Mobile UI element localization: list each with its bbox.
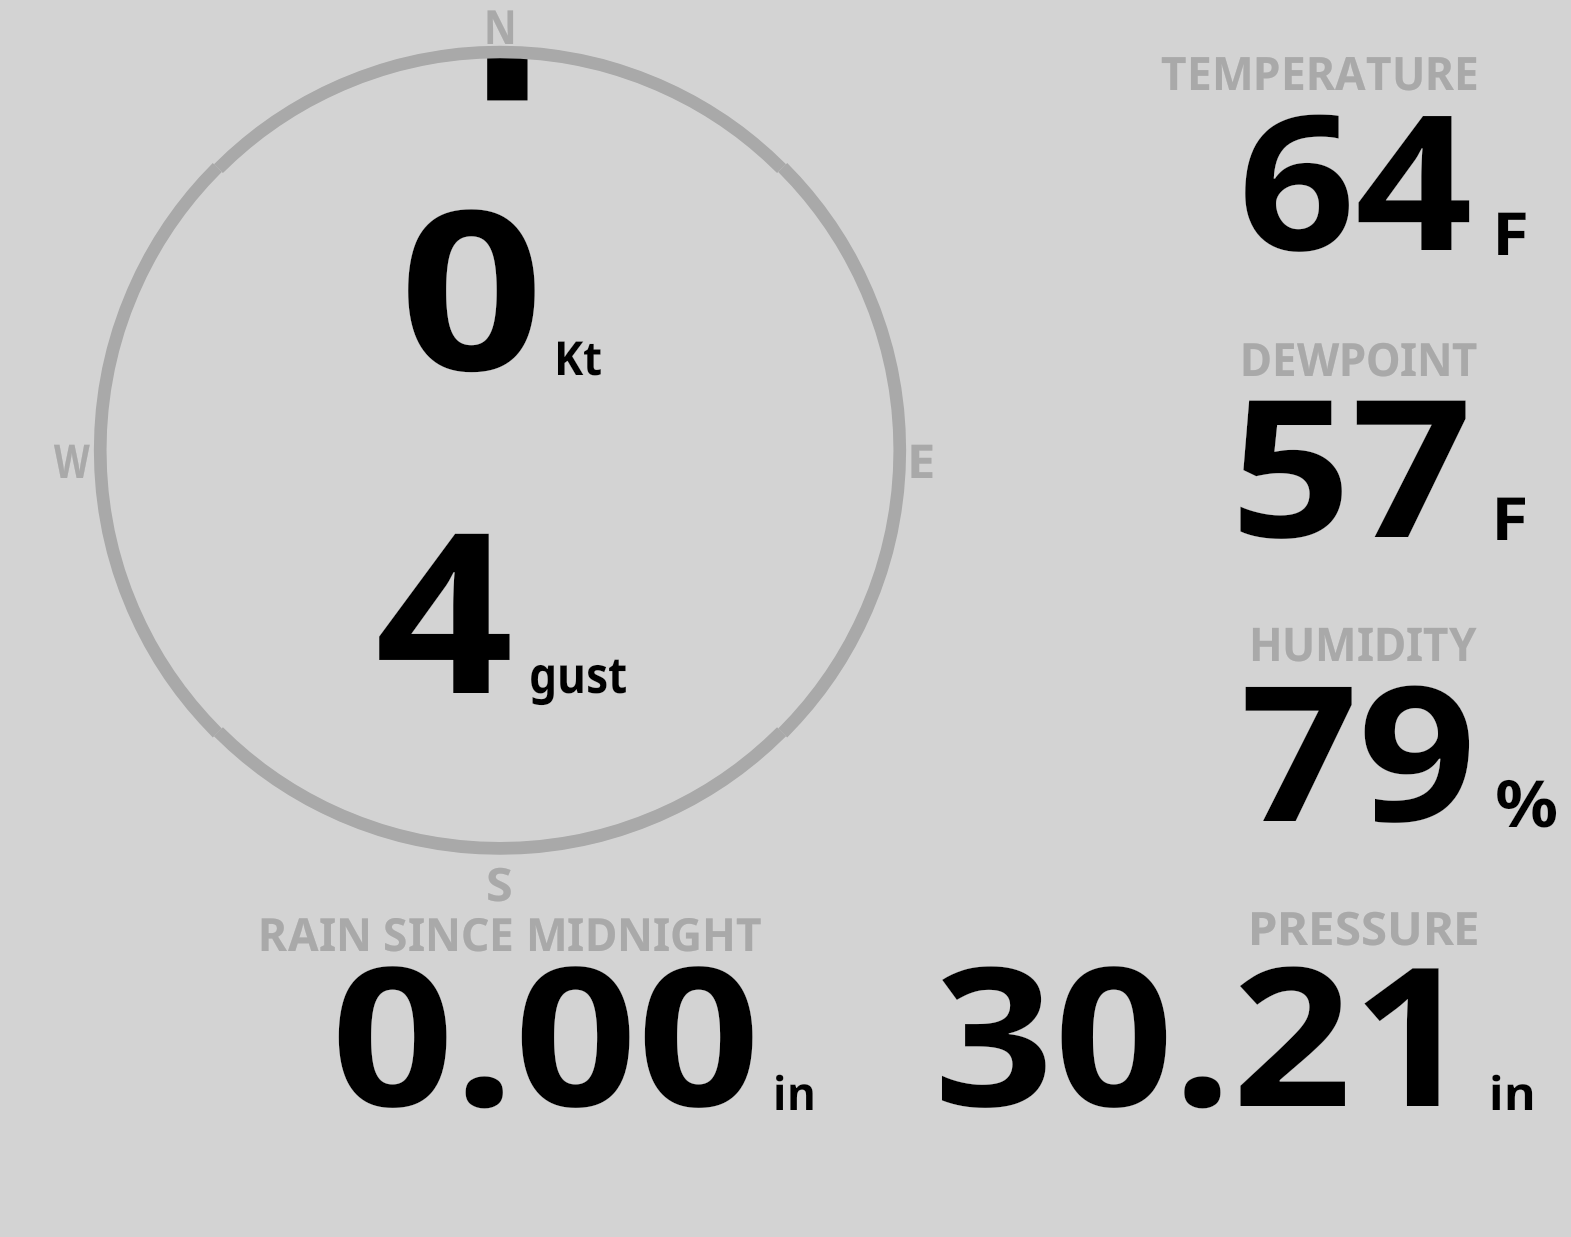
button[interactable]: Wind speed and direction compass, 0 knot… — [95, 40, 910, 910]
button[interactable]: Rain since midnight 0.00 inches — [180, 900, 860, 1150]
button[interactable]: Humidity 79 percent — [1130, 600, 1571, 860]
button[interactable]: Temperature 64 degrees Fahrenheit — [1130, 30, 1571, 290]
button[interactable]: Pressure 30.21 inches — [880, 890, 1571, 1150]
button[interactable]: Dewpoint 57 degrees Fahrenheit — [1130, 315, 1571, 575]
